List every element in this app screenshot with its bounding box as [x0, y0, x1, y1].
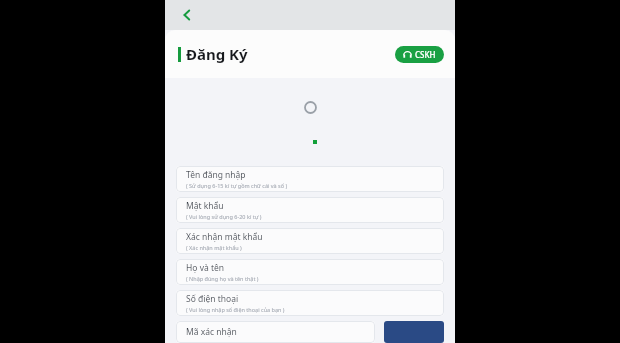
staticText: ( Sử dụng 6-15 kí tự gồm chữ cái và số ) — [186, 182, 288, 189]
button[interactable]: CSKH — [395, 46, 444, 63]
button[interactable]: Refresh captcha — [384, 321, 444, 343]
button[interactable]: Mã xác nhận — [176, 321, 375, 343]
button[interactable]: Tên đăng nhập — [176, 166, 444, 192]
staticText: Mật khẩu — [186, 200, 224, 212]
staticText: Đăng Ký — [186, 44, 248, 64]
staticText: ( Xác nhận mật khẩu ) — [186, 244, 242, 251]
button[interactable]: Số điện thoại — [176, 290, 444, 316]
staticText: Số điện thoại — [186, 293, 239, 305]
button[interactable]: Back — [174, 2, 200, 28]
staticText: Mã xác nhận — [186, 326, 237, 338]
staticText: ( Vui lòng sử dụng 6-20 kí tự ) — [186, 213, 262, 220]
button[interactable]: Họ và tên — [176, 259, 444, 285]
staticText: Họ và tên — [186, 262, 225, 274]
staticText: CSKH — [415, 49, 436, 60]
staticText: ( Vui lòng nhập số điện thoại của bạn ) — [186, 306, 285, 313]
staticText: ( Nhập đúng họ và tên thật ) — [186, 275, 259, 282]
button[interactable]: Xác nhận mật khẩu — [176, 228, 444, 254]
staticText: Tên đăng nhập — [186, 169, 246, 181]
button[interactable]: Mật khẩu — [176, 197, 444, 223]
staticText: Xác nhận mật khẩu — [186, 231, 263, 243]
